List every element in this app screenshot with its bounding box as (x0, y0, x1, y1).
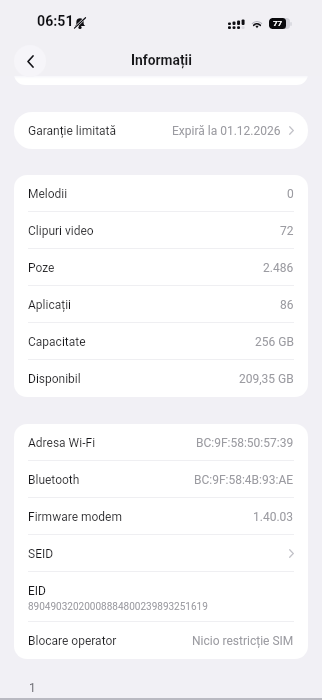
staticText: Bluetooth (28, 473, 80, 487)
staticText: 06:51 (37, 13, 74, 30)
staticText: 86 (280, 298, 294, 312)
staticText: EID (28, 584, 46, 598)
staticText: Aplicații (28, 298, 71, 312)
button[interactable]: Disponibil (14, 360, 308, 397)
staticText: BC:9F:58:4B:93:AE (194, 473, 294, 487)
staticText: SEID (28, 547, 54, 561)
staticText: Poze (28, 261, 55, 275)
staticText: Clipuri video (28, 224, 94, 238)
staticText: Garanție limitată (28, 124, 117, 138)
staticText: Adresa Wi-Fi (28, 436, 96, 450)
button[interactable]: SEID (14, 535, 308, 572)
staticText: Informații (131, 52, 192, 68)
staticText: 1.40.03 (253, 510, 294, 524)
staticText: 72 (280, 224, 294, 238)
staticText: 209,35 GB (239, 372, 294, 386)
staticText: 89049032020008884800239893251619 (28, 601, 208, 613)
staticText: Disponibil (28, 372, 81, 386)
button[interactable]: Adresa Wi-Fi (14, 424, 308, 461)
staticText: Firmware modem (28, 510, 123, 524)
button[interactable]: Firmware modem (14, 498, 308, 535)
button[interactable]: EID (14, 572, 308, 622)
staticText: 2.486 (263, 261, 294, 275)
button[interactable]: Garanție limitată (14, 112, 308, 149)
button[interactable]: Blocare operator (14, 622, 308, 659)
button[interactable]: Capacitate (14, 323, 308, 360)
staticText: 77 (273, 19, 283, 28)
staticText: Blocare operator (28, 634, 117, 648)
staticText: Expiră la 01.12.2026 (172, 124, 281, 138)
button[interactable]: Melodii (14, 175, 308, 212)
button[interactable]: Clipuri video (14, 212, 308, 249)
button[interactable]: Bluetooth (14, 461, 308, 498)
staticText: 1 (29, 681, 36, 695)
staticText: 256 GB (255, 335, 294, 349)
button[interactable]: Aplicații (14, 286, 308, 323)
button[interactable]: Back (14, 45, 46, 77)
staticText: Melodii (28, 187, 68, 201)
staticText: BC:9F:58:50:57:39 (196, 436, 294, 450)
staticText: 0 (287, 187, 294, 201)
staticText: Capacitate (28, 335, 86, 349)
staticText: Nicio restricție SIM (192, 634, 294, 648)
button[interactable]: Poze (14, 249, 308, 286)
